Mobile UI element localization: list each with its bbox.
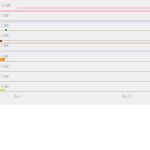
staticText: Dec 1 [14, 95, 22, 98]
staticText: 3 AM [1, 34, 8, 37]
staticText: 8 AM [1, 85, 8, 88]
staticText: 12 AM [1, 4, 10, 7]
staticText: 2 AM [1, 24, 8, 27]
staticText: 1 AM [1, 14, 8, 17]
staticText: 6 AM [1, 65, 8, 68]
staticText: 5 AM [1, 55, 8, 58]
staticText: 7 AM [1, 75, 8, 78]
staticText: 4 AM [1, 44, 8, 47]
staticText: Dec 31 [122, 95, 132, 98]
